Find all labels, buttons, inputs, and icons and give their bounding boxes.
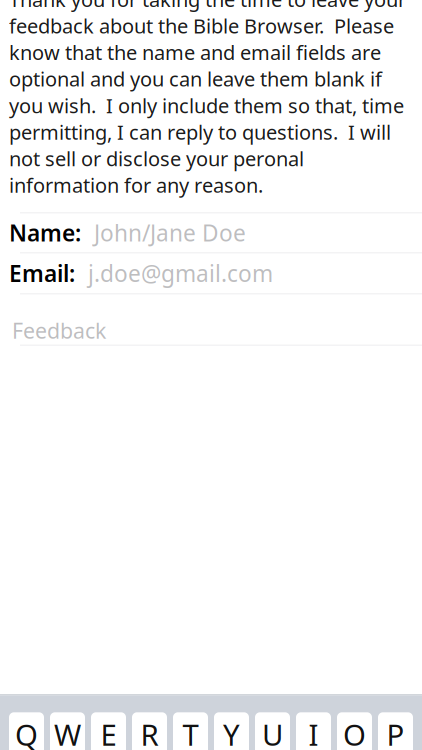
button[interactable]: R (132, 712, 167, 750)
button[interactable]: O (337, 712, 372, 750)
staticText: W (54, 715, 81, 750)
staticText: John/Jane Doe (94, 218, 246, 248)
staticText: Email: (9, 258, 75, 288)
staticText: I (308, 715, 318, 750)
staticText: O (343, 715, 366, 750)
staticText: E (100, 715, 116, 750)
button[interactable]: I (296, 712, 331, 750)
staticText: R (140, 715, 158, 750)
staticText: T (182, 715, 198, 750)
button[interactable]: U (255, 712, 290, 750)
staticText: Q (15, 715, 38, 750)
staticText: Y (223, 715, 240, 750)
staticText: Feedback (12, 316, 106, 345)
button[interactable]: E (91, 712, 126, 750)
button[interactable]: W (50, 712, 85, 750)
staticText: Thank you for taking the time to leave y… (9, 0, 406, 198)
button[interactable]: T (173, 712, 208, 750)
staticText: Name: (9, 218, 81, 248)
button[interactable]: Q (9, 712, 44, 750)
staticText: U (262, 715, 283, 750)
button[interactable]: P (378, 712, 413, 750)
staticText: P (386, 715, 404, 750)
button[interactable]: Y (214, 712, 249, 750)
staticText: j.doe@gmail.com (88, 258, 273, 288)
